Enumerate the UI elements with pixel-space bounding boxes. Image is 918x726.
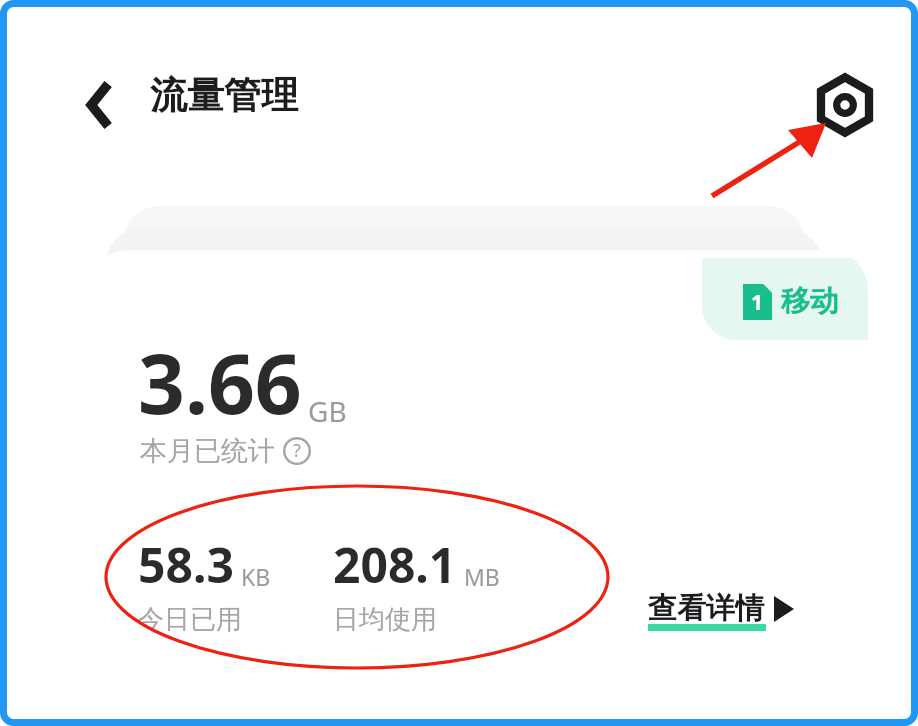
button[interactable]: 1 <box>88 250 868 700</box>
staticText: 208.1 <box>333 532 457 597</box>
button[interactable]: 流量管理 <box>150 72 298 119</box>
staticText: GB <box>308 392 347 430</box>
button[interactable]: 查看详情 <box>648 590 794 627</box>
staticText: 查看详情 <box>648 590 764 627</box>
staticText: 3.66 <box>138 326 302 438</box>
button[interactable]: 58.3 <box>138 532 271 636</box>
button[interactable]: Help <box>283 437 311 465</box>
staticText: 流量管理 <box>150 72 298 119</box>
staticText: ? <box>293 438 301 463</box>
staticText: 本月已统计 <box>140 434 275 468</box>
staticText: 今日已用 <box>138 603 242 636</box>
button[interactable]: Settings <box>812 72 878 138</box>
staticText: 移动 <box>781 283 839 320</box>
staticText: MB <box>464 561 500 592</box>
button[interactable]: Back <box>70 74 132 136</box>
staticText: 58.3 <box>138 532 234 597</box>
staticText: 日均使用 <box>333 603 437 636</box>
staticText: 1 <box>751 288 764 317</box>
button[interactable]: 208.1 <box>333 532 500 636</box>
button[interactable]: 1 <box>702 258 868 340</box>
staticText: KB <box>241 561 271 592</box>
